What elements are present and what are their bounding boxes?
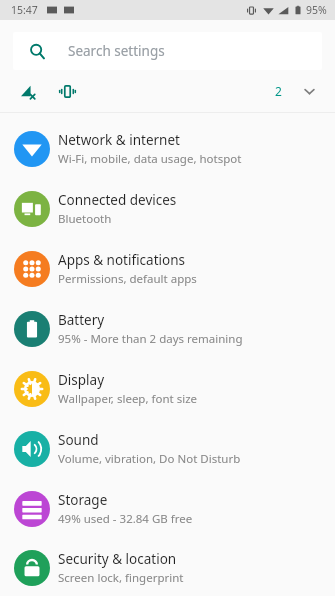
staticText: Bluetooth xyxy=(58,211,112,227)
staticText: Battery xyxy=(58,311,105,329)
staticText: Screen lock, fingerprint xyxy=(58,570,184,586)
other: Expand suggestions xyxy=(299,81,319,101)
staticText: Storage xyxy=(58,491,108,509)
staticText: Apps & notifications xyxy=(58,251,185,269)
button[interactable]: Storage xyxy=(0,479,335,539)
staticText: Display xyxy=(58,371,105,389)
staticText: Search settings xyxy=(68,42,165,60)
button[interactable]: 2 xyxy=(0,70,335,112)
staticText: Network & internet xyxy=(58,131,180,149)
staticText: 95% - More than 2 days remaining xyxy=(58,331,243,347)
staticText: 49% used - 32.84 GB free xyxy=(58,511,193,527)
button[interactable]: Search settings xyxy=(13,32,322,70)
staticText: Volume, vibration, Do Not Disturb xyxy=(58,451,241,467)
staticText: Permissions, default apps xyxy=(58,271,197,287)
staticText: Wi-Fi, mobile, data usage, hotspot xyxy=(58,151,242,167)
staticText: 15:47 xyxy=(11,3,38,17)
staticText: Sound xyxy=(58,431,99,449)
button[interactable]: Security & location xyxy=(0,539,335,596)
staticText: Wallpaper, sleep, font size xyxy=(58,391,198,407)
button[interactable]: Battery xyxy=(0,299,335,359)
button[interactable]: Display xyxy=(0,359,335,419)
staticText: Security & location xyxy=(58,550,177,568)
staticText: 2 xyxy=(275,83,282,99)
button[interactable]: Connected devices xyxy=(0,179,335,239)
staticText: Connected devices xyxy=(58,191,177,209)
button[interactable]: Apps & notifications xyxy=(0,239,335,299)
staticText: 95% xyxy=(306,3,327,17)
button[interactable]: Network & internet xyxy=(0,119,335,179)
button[interactable]: Sound xyxy=(0,419,335,479)
